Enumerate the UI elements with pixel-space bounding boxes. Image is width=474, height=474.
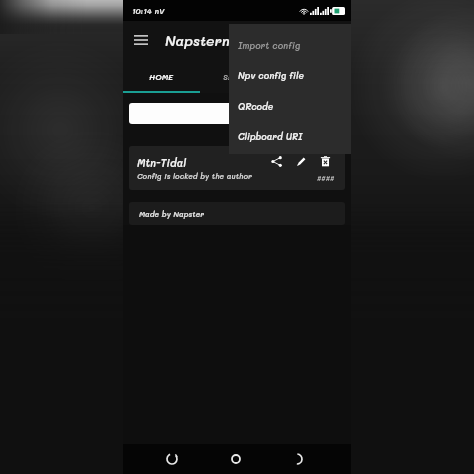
button[interactable]: Delete bbox=[317, 153, 334, 170]
staticText: Import config bbox=[238, 40, 301, 52]
button[interactable]: Import config bbox=[229, 31, 351, 61]
staticText: Made by Napster bbox=[139, 209, 205, 219]
button[interactable]: SERVER bbox=[200, 59, 277, 93]
button[interactable]: Edit bbox=[293, 153, 310, 170]
button[interactable]: HOME bbox=[123, 59, 200, 93]
staticText: QRcode bbox=[238, 101, 274, 113]
staticText: HOME bbox=[149, 72, 174, 82]
button[interactable]: Recent apps bbox=[158, 445, 185, 472]
staticText: 10:14 nV bbox=[132, 6, 165, 16]
staticText: Napsternetv bbox=[165, 31, 252, 49]
staticText: Npv config file bbox=[238, 70, 304, 82]
button[interactable]: Npv config file bbox=[229, 61, 351, 91]
staticText: #### bbox=[317, 174, 335, 183]
staticText: Mtn-Tidal bbox=[137, 156, 186, 170]
button[interactable]: Back bbox=[283, 445, 310, 472]
button[interactable]: LOG bbox=[277, 59, 351, 93]
staticText: SERVER bbox=[223, 72, 254, 82]
staticText: Config is locked by the author bbox=[137, 171, 252, 181]
button[interactable]: Clipboard URI bbox=[229, 122, 351, 152]
button[interactable]: Mtn-Tidal bbox=[129, 146, 345, 190]
button[interactable]: Made by Napster bbox=[129, 202, 345, 225]
staticText: Clipboard URI bbox=[238, 131, 303, 143]
button[interactable] bbox=[129, 103, 345, 124]
button[interactable]: Open navigation menu bbox=[123, 22, 159, 58]
button[interactable]: Share bbox=[268, 153, 285, 170]
button[interactable]: QRcode bbox=[229, 92, 351, 122]
button[interactable]: Home bbox=[222, 445, 249, 472]
